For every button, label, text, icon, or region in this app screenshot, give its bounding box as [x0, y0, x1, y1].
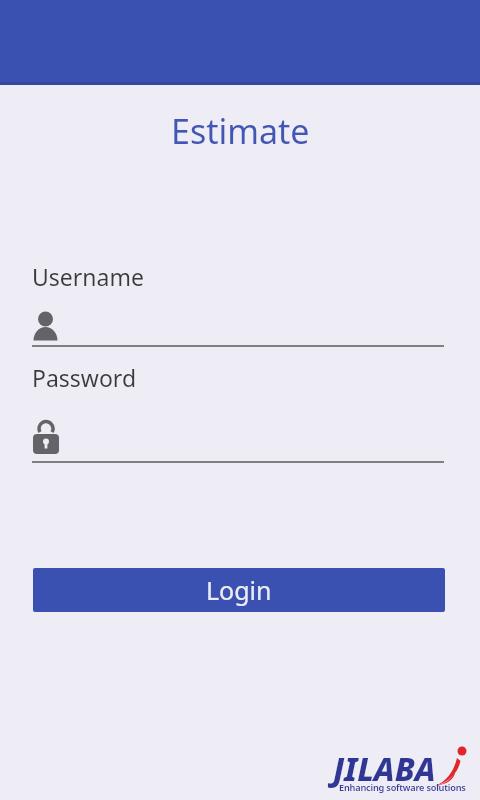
button[interactable] — [32, 420, 444, 463]
button[interactable]: Login — [33, 568, 445, 612]
staticText: Login — [206, 573, 272, 607]
staticText: Estimate — [171, 108, 310, 154]
staticText: Enhancing software solutions — [339, 781, 466, 794]
button[interactable] — [32, 308, 444, 347]
staticText: Password — [32, 362, 137, 393]
staticText: JILABA — [333, 747, 436, 791]
staticText: Username — [32, 261, 144, 292]
